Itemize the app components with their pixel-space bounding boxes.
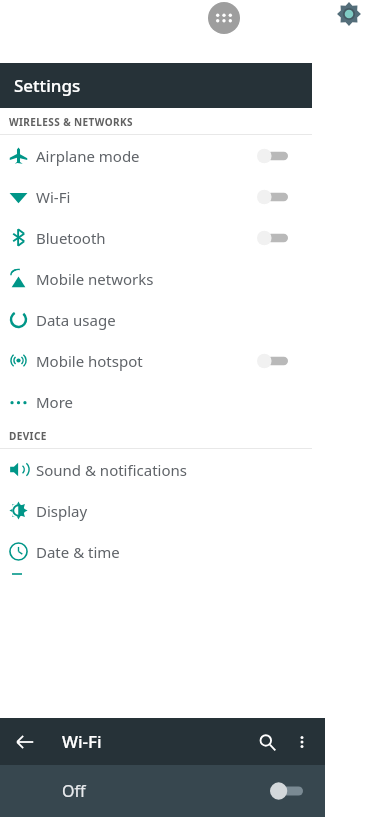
staticText: Off [62,780,86,802]
button[interactable]: Search [251,726,283,758]
staticText: Data usage [36,310,288,330]
staticText: Wi-Fi [36,187,256,207]
button[interactable]: Settings [336,1,362,27]
staticText: Airplane mode [36,146,256,166]
staticText: Sound & notifications [36,460,288,480]
button[interactable]: Mobile hotspot [0,340,312,381]
button[interactable]: Date & time [0,531,312,572]
staticText: Mobile hotspot [36,351,256,371]
button[interactable]: Apps [208,2,240,34]
button[interactable]: Off [0,765,325,817]
button[interactable]: Display [0,490,312,531]
staticText: Date & time [36,542,288,562]
button[interactable]: Mobile networks [0,258,312,299]
staticText: Mobile networks [36,269,288,289]
button[interactable]: Sound & notifications [0,449,312,490]
button[interactable]: Data usage [0,299,312,340]
staticText: More [36,392,288,412]
button[interactable]: Back [10,727,40,757]
button[interactable]: Bluetooth [0,217,312,258]
button[interactable]: More [0,381,312,422]
staticText: Bluetooth [36,228,256,248]
staticText: DEVICE [9,429,47,443]
staticText: Display [36,501,288,521]
staticText: WIRELESS & NETWORKS [9,115,133,129]
button[interactable]: Airplane mode [0,135,312,176]
button[interactable]: More options [287,727,317,757]
button[interactable]: Wi-Fi [0,176,312,217]
staticText: Settings [14,74,81,97]
staticText: Wi-Fi [62,730,102,753]
